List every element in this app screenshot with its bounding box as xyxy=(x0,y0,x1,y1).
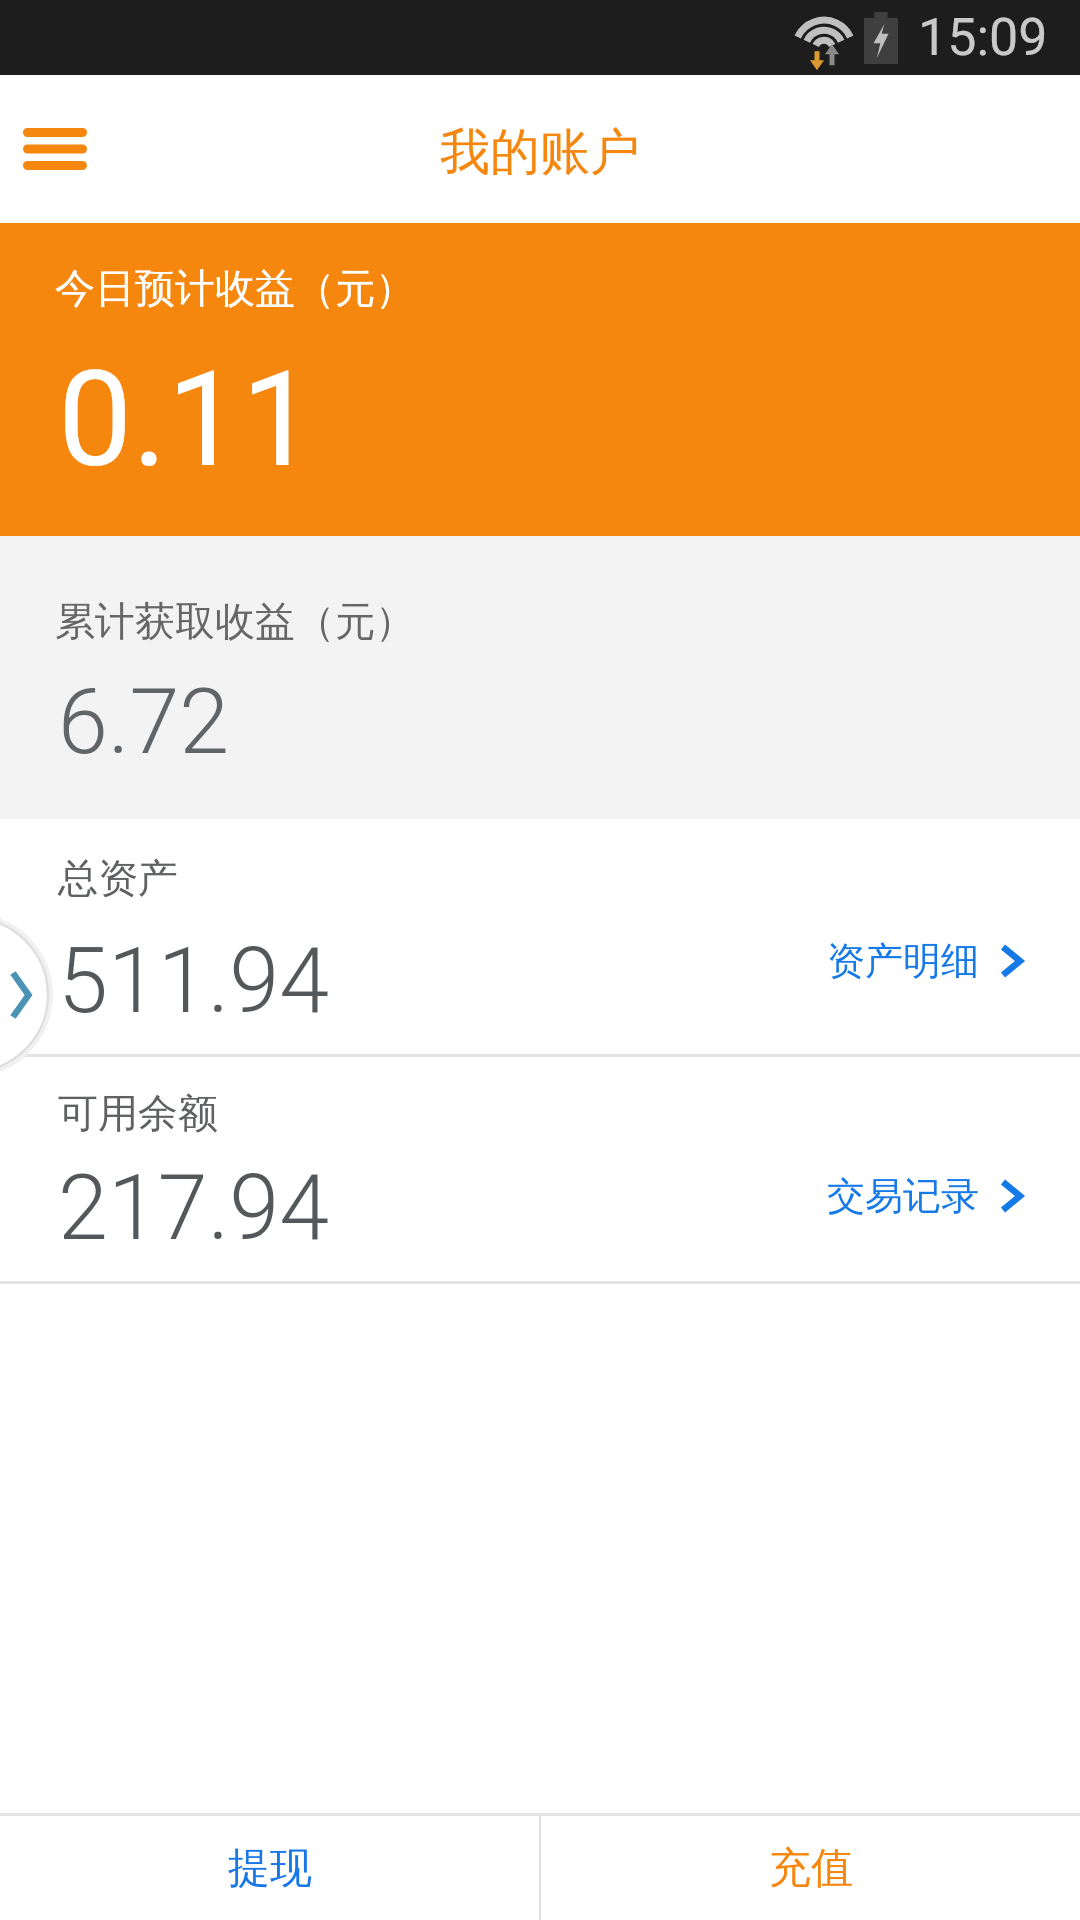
button[interactable]: 总资产 xyxy=(0,819,1080,1054)
button[interactable]: 交易记录 xyxy=(827,1172,1023,1220)
staticText: 0.11 xyxy=(58,343,316,498)
staticText: 资产明细 xyxy=(827,937,979,985)
staticText: 今日预计收益（元） xyxy=(55,263,415,313)
staticText: 总资产 xyxy=(58,853,178,903)
button[interactable]: 提现 xyxy=(0,1816,539,1920)
staticText: 交易记录 xyxy=(827,1172,979,1220)
staticText: 我的账户 xyxy=(440,121,640,184)
staticText: 提现 xyxy=(228,1842,312,1895)
staticText: 15:09 xyxy=(918,7,1048,68)
staticText: 充值 xyxy=(769,1842,853,1895)
staticText: 6.72 xyxy=(58,670,230,775)
staticText: 217.94 xyxy=(58,1156,330,1261)
button[interactable]: 充值 xyxy=(541,1816,1080,1920)
button[interactable] xyxy=(23,128,87,170)
button[interactable] xyxy=(0,918,48,1072)
staticText: 511.94 xyxy=(58,929,330,1034)
staticText: 累计获取收益（元） xyxy=(55,596,415,646)
button[interactable]: 资产明细 xyxy=(827,937,1023,985)
button[interactable]: 可用余额 xyxy=(0,1057,1080,1281)
staticText: 可用余额 xyxy=(58,1088,218,1138)
